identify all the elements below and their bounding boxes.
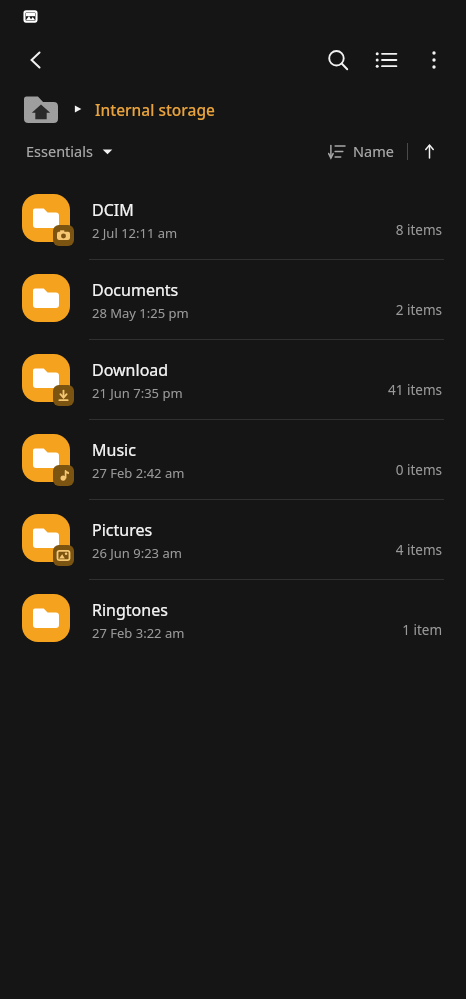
staticText: Name [353, 141, 394, 161]
button[interactable]: Essentials [26, 141, 113, 161]
staticText: 27 Feb 3:22 am [92, 624, 185, 642]
staticText: Documents [92, 279, 179, 301]
button[interactable]: Back [12, 36, 60, 84]
button[interactable]: Home [24, 96, 58, 123]
button[interactable]: Search [314, 36, 362, 84]
staticText: Pictures [92, 519, 153, 541]
staticText: 8 items [395, 221, 442, 239]
button[interactable]: Name [328, 141, 394, 161]
staticText: Internal storage [95, 99, 215, 120]
staticText: DCIM [92, 199, 134, 221]
button[interactable]: Sort ascending [414, 136, 444, 166]
button[interactable]: More options [410, 36, 458, 84]
staticText: 2 Jul 12:11 am [92, 224, 178, 242]
button[interactable]: Ringtones [0, 580, 466, 660]
button[interactable]: Internal storage [95, 99, 215, 120]
button[interactable]: List view [362, 36, 410, 84]
staticText: 41 items [387, 381, 442, 399]
staticText: 0 items [395, 461, 442, 479]
button[interactable]: Documents [0, 260, 466, 340]
staticText: 21 Jun 7:35 pm [92, 384, 183, 402]
staticText: 4 items [395, 541, 442, 559]
staticText: 1 item [402, 621, 442, 639]
staticText: 28 May 1:25 pm [92, 304, 189, 322]
staticText: 26 Jun 9:23 am [92, 544, 182, 562]
button[interactable]: DCIM [0, 180, 466, 260]
staticText: Music [92, 439, 136, 461]
staticText: Ringtones [92, 599, 168, 621]
button[interactable]: Pictures [0, 500, 466, 580]
button[interactable]: Download [0, 340, 466, 420]
staticText: 2 items [395, 301, 442, 319]
staticText: Essentials [26, 141, 93, 161]
staticText: 27 Feb 2:42 am [92, 464, 185, 482]
button[interactable]: Music [0, 420, 466, 500]
staticText: Download [92, 359, 169, 381]
